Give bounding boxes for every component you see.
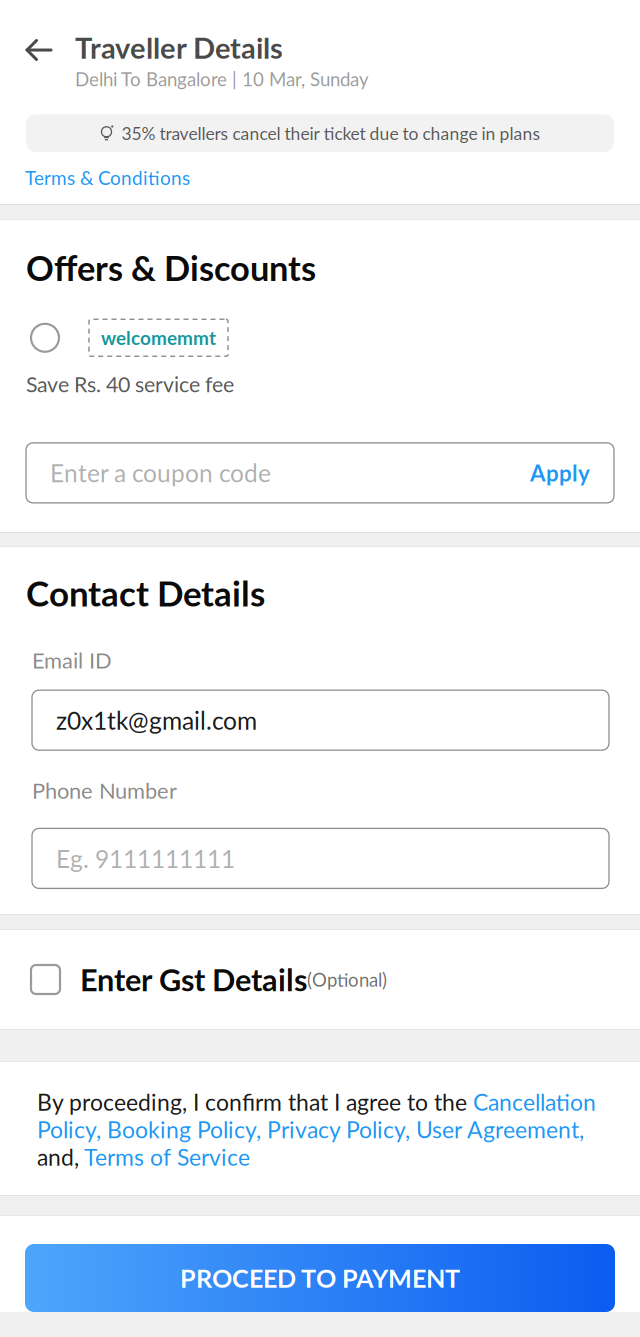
staticText: Traveller Details	[75, 30, 283, 65]
staticText: Email ID	[32, 647, 112, 673]
staticText: Enter Gst Details	[80, 961, 307, 998]
staticText: PROCEED TO PAYMENT	[180, 1263, 460, 1293]
staticText: 35% travellers cancel their ticket due t…	[121, 123, 540, 144]
staticText: z0x1tk@gmail.com	[56, 705, 257, 735]
button[interactable]: Enter Gst Details	[0, 930, 640, 1029]
staticText: Phone Number	[32, 777, 177, 803]
button[interactable]: Terms & Conditions	[25, 160, 190, 195]
button[interactable]: By proceeding, I confirm that I agree to…	[37, 1062, 596, 1171]
button[interactable]: welcomemmt	[26, 288, 614, 356]
staticText: By proceeding, I confirm that I agree to…	[37, 1088, 596, 1171]
staticText: Contact Details	[26, 572, 265, 614]
staticText: welcomemmt	[101, 326, 216, 349]
button[interactable]: PROCEED TO PAYMENT	[25, 1244, 615, 1312]
button[interactable]: Back	[25, 30, 75, 70]
staticText: Offers & Discounts	[26, 247, 316, 288]
staticText: Eg. 9111111111	[56, 844, 235, 873]
staticText: Enter a coupon code	[50, 458, 271, 488]
staticText: (Optional)	[307, 968, 387, 991]
staticText: Terms & Conditions	[25, 166, 190, 189]
staticText: Save Rs. 40 service fee	[26, 371, 234, 397]
staticText: Delhi To Bangalore | 10 Mar, Sunday	[75, 68, 369, 90]
staticText: Apply	[530, 459, 590, 486]
